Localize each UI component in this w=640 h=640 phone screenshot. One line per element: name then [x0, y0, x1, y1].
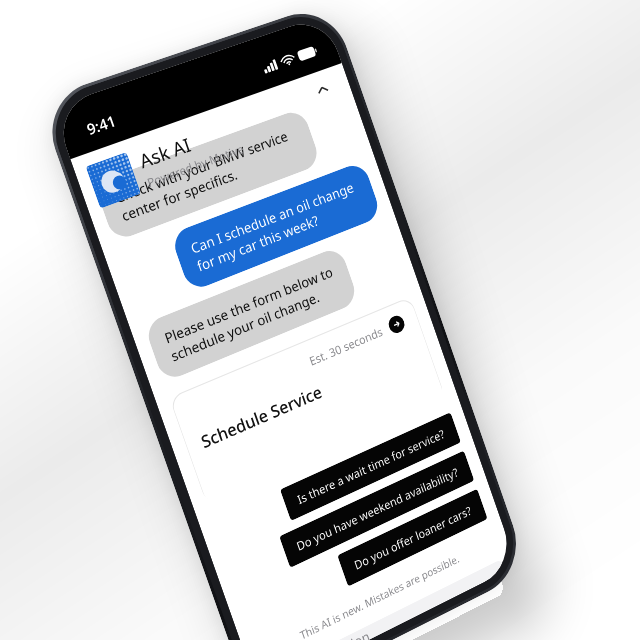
button[interactable]: Can I schedule an oil change for my car … [170, 161, 382, 292]
button[interactable]: Do you offer loaner cars? [337, 489, 488, 587]
staticText: Is there a wait time for service? [295, 425, 447, 507]
staticText: Est. 30 seconds [307, 323, 385, 369]
button[interactable]: Est. 30 seconds [169, 295, 445, 505]
staticText: Do you offer loaner cars? [352, 502, 474, 573]
staticText: Can I schedule an oil change for my car … [188, 176, 365, 275]
other: Open form [386, 313, 407, 336]
staticText: Ask a question [283, 626, 371, 640]
button[interactable]: Ask a question [267, 559, 506, 640]
staticText: Ask AI [136, 132, 194, 174]
other: Ask AI logo [86, 152, 141, 209]
button[interactable]: Check with your BMW service center for s… [93, 108, 322, 242]
staticText: 9:41 [84, 110, 118, 139]
staticText: Check with your BMW service center for s… [112, 124, 304, 225]
button[interactable]: Collapse [307, 74, 337, 105]
button[interactable]: Is there a wait time for service? [280, 412, 461, 521]
button[interactable]: Do you have weekend availability? [279, 450, 474, 568]
staticText: Do you have weekend availability? [294, 464, 460, 554]
staticText: Please use the form below to schedule yo… [162, 262, 342, 365]
staticText: Powered by Motive [145, 140, 246, 190]
button[interactable]: Ask AI logo [86, 114, 246, 209]
staticText: Schedule Service [198, 380, 325, 453]
staticText: This AI is new. Mistakes are possible. [258, 533, 497, 640]
button[interactable]: Please use the form below to schedule yo… [143, 246, 359, 383]
